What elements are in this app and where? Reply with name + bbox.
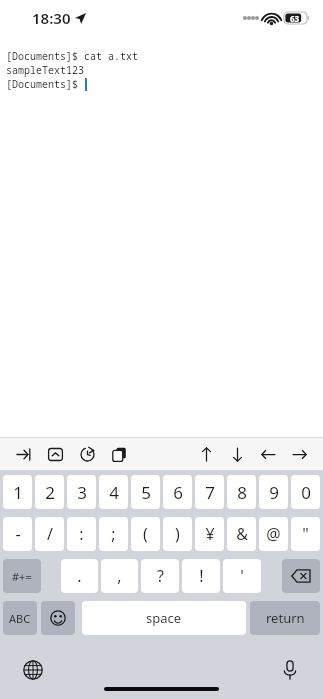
button[interactable]: 5 (131, 475, 160, 509)
button[interactable]: ABC (3, 601, 37, 635)
button[interactable]: Paste (108, 443, 130, 465)
button[interactable]: Control (44, 443, 66, 465)
staticText: 5 (141, 481, 151, 504)
staticText: 18:30 (32, 8, 71, 28)
button[interactable]: return (250, 601, 320, 635)
button[interactable]: Tab (12, 443, 34, 465)
button[interactable]: @ (259, 517, 288, 551)
staticText: " (302, 523, 309, 545)
staticText: space (146, 609, 182, 627)
staticText: / (47, 523, 53, 545)
staticText: 6 (173, 481, 183, 504)
staticText: : (79, 523, 84, 545)
staticText: ? (157, 565, 164, 587)
staticText: ABC (9, 611, 31, 626)
staticText: 2 (45, 481, 55, 504)
button[interactable]: : (67, 517, 96, 551)
staticText: 9 (269, 481, 279, 504)
button[interactable]: ; (99, 517, 128, 551)
button[interactable]: ! (182, 559, 220, 593)
staticText: & (236, 523, 248, 545)
button[interactable]: 9 (259, 475, 288, 509)
staticText: 63 (290, 13, 300, 24)
staticText: 1 (13, 481, 23, 504)
button[interactable]: ' (223, 559, 261, 593)
button[interactable]: 6 (163, 475, 192, 509)
staticText: ! (199, 565, 204, 587)
staticText: . (77, 565, 82, 587)
staticText: #+= (12, 569, 32, 584)
staticText: 7 (205, 481, 215, 504)
button[interactable]: - (3, 517, 32, 551)
button[interactable]: Right (288, 443, 310, 465)
button[interactable]: & (227, 517, 256, 551)
staticText: 0 (301, 481, 311, 504)
button[interactable]: . (61, 559, 98, 593)
button[interactable]: Dictate (277, 657, 303, 683)
staticText: ¥ (205, 523, 215, 545)
button[interactable]: space (82, 601, 246, 635)
staticText: ; (111, 523, 116, 545)
staticText: , (117, 565, 122, 587)
button[interactable]: , (101, 559, 138, 593)
staticText: sampleText123 (6, 63, 84, 77)
button[interactable]: ¥ (195, 517, 224, 551)
button[interactable]: 4 (99, 475, 128, 509)
button[interactable]: 2 (35, 475, 64, 509)
staticText: [Documents]$ (6, 77, 84, 91)
button[interactable]: " (291, 517, 320, 551)
staticText: ) (175, 523, 180, 545)
staticText: @ (266, 523, 281, 545)
staticText: 3 (77, 481, 87, 504)
staticText: [Documents]$ cat a.txt (6, 49, 138, 63)
staticText: - (15, 523, 21, 545)
button[interactable]: Up (195, 443, 217, 465)
button[interactable]: Backspace (282, 559, 320, 593)
staticText: 4 (109, 481, 119, 504)
button[interactable]: 1 (3, 475, 32, 509)
button[interactable]: #+= (3, 559, 41, 593)
staticText: return (266, 609, 305, 627)
button[interactable]: Down (226, 443, 248, 465)
button[interactable]: ? (141, 559, 179, 593)
button[interactable]: ( (131, 517, 160, 551)
button[interactable]: / (35, 517, 64, 551)
button[interactable]: History (76, 443, 98, 465)
button[interactable]: 0 (291, 475, 320, 509)
button[interactable]: Change keyboard (20, 657, 46, 683)
button[interactable]: 3 (67, 475, 96, 509)
button[interactable]: 7 (195, 475, 224, 509)
button[interactable]: ) (163, 517, 192, 551)
button[interactable]: 8 (227, 475, 256, 509)
staticText: 8 (237, 481, 247, 504)
button[interactable]: Left (257, 443, 279, 465)
button[interactable]: Emoji (41, 601, 75, 635)
staticText: ( (143, 523, 148, 545)
staticText: ' (240, 565, 244, 587)
